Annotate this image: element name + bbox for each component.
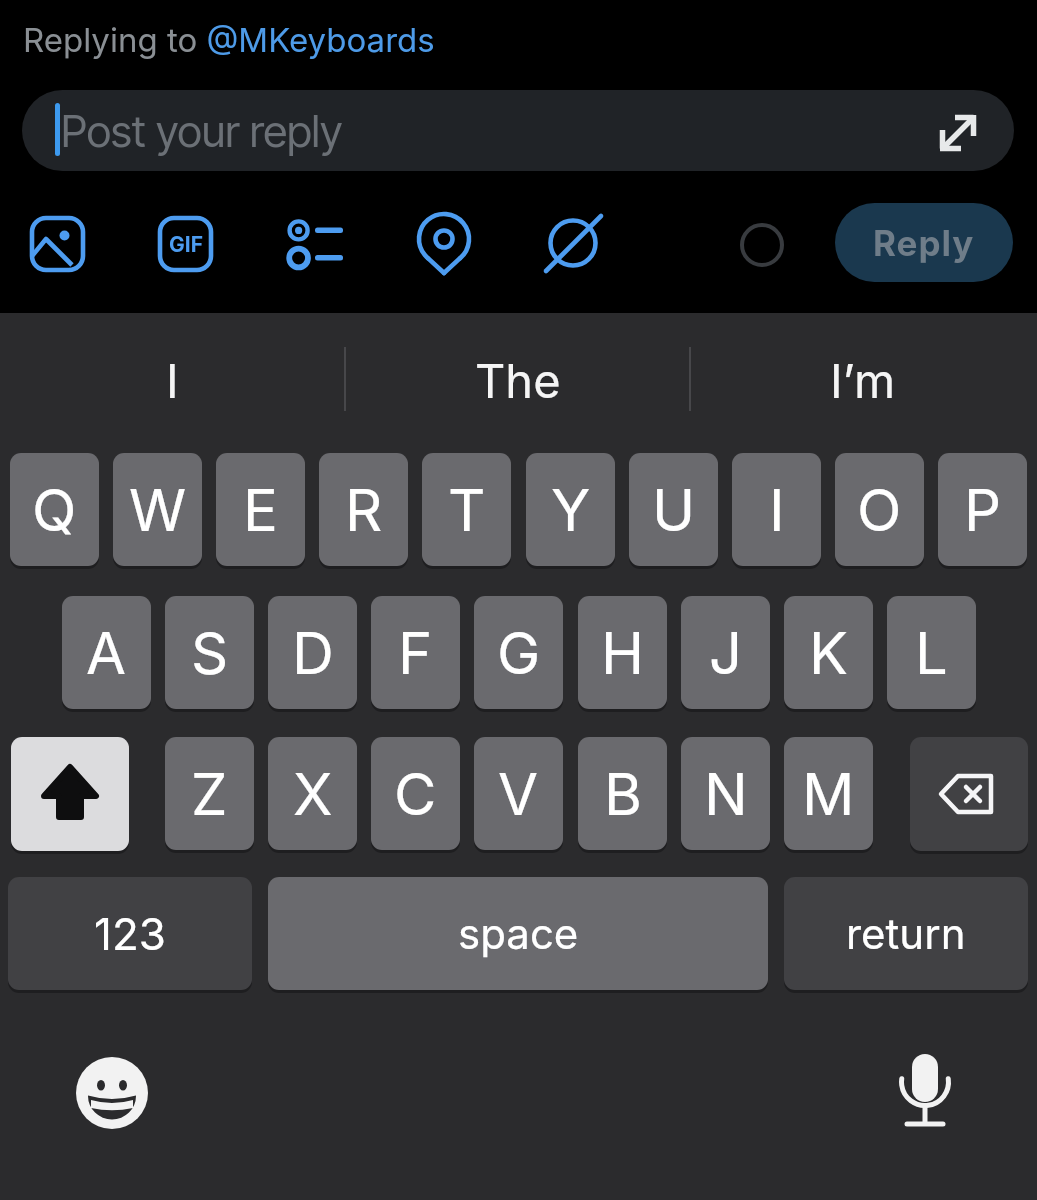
button[interactable] bbox=[72, 1053, 152, 1133]
staticText: return bbox=[846, 908, 966, 959]
button[interactable]: Y bbox=[526, 453, 615, 566]
button[interactable]: Reply bbox=[835, 203, 1013, 282]
button[interactable]: I bbox=[732, 453, 821, 566]
staticText: N bbox=[704, 759, 748, 829]
button[interactable]: GIF bbox=[154, 212, 218, 276]
button[interactable]: X bbox=[268, 737, 357, 850]
button[interactable]: D bbox=[268, 596, 357, 709]
staticText: K bbox=[809, 618, 848, 688]
button[interactable]: G bbox=[474, 596, 563, 709]
staticText: J bbox=[709, 618, 743, 688]
button[interactable]: V bbox=[474, 737, 563, 850]
staticText: T bbox=[448, 475, 486, 545]
button[interactable]: Z bbox=[165, 737, 254, 850]
staticText: H bbox=[601, 618, 645, 688]
button[interactable] bbox=[541, 212, 605, 276]
button[interactable]: 123 bbox=[8, 877, 252, 990]
staticText: P bbox=[964, 475, 1002, 545]
button[interactable] bbox=[885, 1040, 965, 1140]
button[interactable]: P bbox=[938, 453, 1027, 566]
button[interactable]: U bbox=[629, 453, 718, 566]
button[interactable]: L bbox=[887, 596, 976, 709]
staticText: I bbox=[166, 352, 179, 408]
button[interactable] bbox=[412, 212, 476, 276]
staticText: 123 bbox=[94, 907, 166, 960]
button[interactable]: H bbox=[578, 596, 667, 709]
staticText: M bbox=[802, 759, 855, 829]
staticText: X bbox=[293, 759, 333, 829]
button[interactable]: return bbox=[784, 877, 1028, 990]
button[interactable]: O bbox=[835, 453, 924, 566]
staticText: W bbox=[129, 475, 187, 545]
button[interactable]: Q bbox=[10, 453, 99, 566]
staticText: C bbox=[394, 759, 437, 829]
button[interactable]: B bbox=[578, 737, 667, 850]
staticText: I bbox=[769, 475, 785, 545]
button[interactable] bbox=[910, 737, 1028, 851]
staticText: D bbox=[292, 618, 334, 688]
button[interactable]: M bbox=[784, 737, 873, 850]
button[interactable]: W bbox=[113, 453, 202, 566]
button[interactable]: The bbox=[406, 352, 630, 408]
staticText: F bbox=[398, 618, 433, 688]
staticText: Q bbox=[32, 475, 77, 545]
button[interactable]: S bbox=[165, 596, 254, 709]
staticText: A bbox=[86, 618, 127, 688]
staticText: E bbox=[243, 475, 278, 545]
staticText: G bbox=[497, 618, 541, 688]
staticText: R bbox=[345, 475, 383, 545]
staticText: L bbox=[915, 618, 948, 688]
staticText: O bbox=[857, 475, 902, 545]
button[interactable]: F bbox=[371, 596, 460, 709]
staticText: B bbox=[604, 759, 642, 829]
staticText: S bbox=[191, 618, 229, 688]
button[interactable]: Post your reply bbox=[22, 90, 1014, 171]
staticText: Reply bbox=[873, 222, 975, 264]
button[interactable]: N bbox=[681, 737, 770, 850]
button[interactable]: J bbox=[681, 596, 770, 709]
button[interactable]: T bbox=[422, 453, 511, 566]
button[interactable] bbox=[11, 737, 129, 851]
staticText: U bbox=[652, 475, 696, 545]
button[interactable]: A bbox=[62, 596, 151, 709]
button[interactable]: R bbox=[319, 453, 408, 566]
button[interactable]: space bbox=[268, 877, 768, 990]
button[interactable]: I bbox=[60, 352, 284, 408]
button[interactable]: I’m bbox=[751, 352, 975, 408]
staticText: Post your reply bbox=[61, 104, 343, 157]
button[interactable]: C bbox=[371, 737, 460, 850]
staticText: I’m bbox=[830, 352, 896, 408]
button[interactable]: Replying to @MKeyboards bbox=[23, 20, 435, 60]
staticText: Y bbox=[551, 475, 591, 545]
button[interactable] bbox=[281, 212, 345, 276]
staticText: space bbox=[458, 908, 579, 959]
staticText: Z bbox=[191, 759, 228, 829]
staticText: The bbox=[475, 352, 561, 408]
button[interactable]: E bbox=[216, 453, 305, 566]
staticText: GIF bbox=[169, 232, 203, 257]
button[interactable]: K bbox=[784, 596, 873, 709]
staticText: V bbox=[498, 759, 539, 829]
button[interactable] bbox=[26, 212, 90, 276]
